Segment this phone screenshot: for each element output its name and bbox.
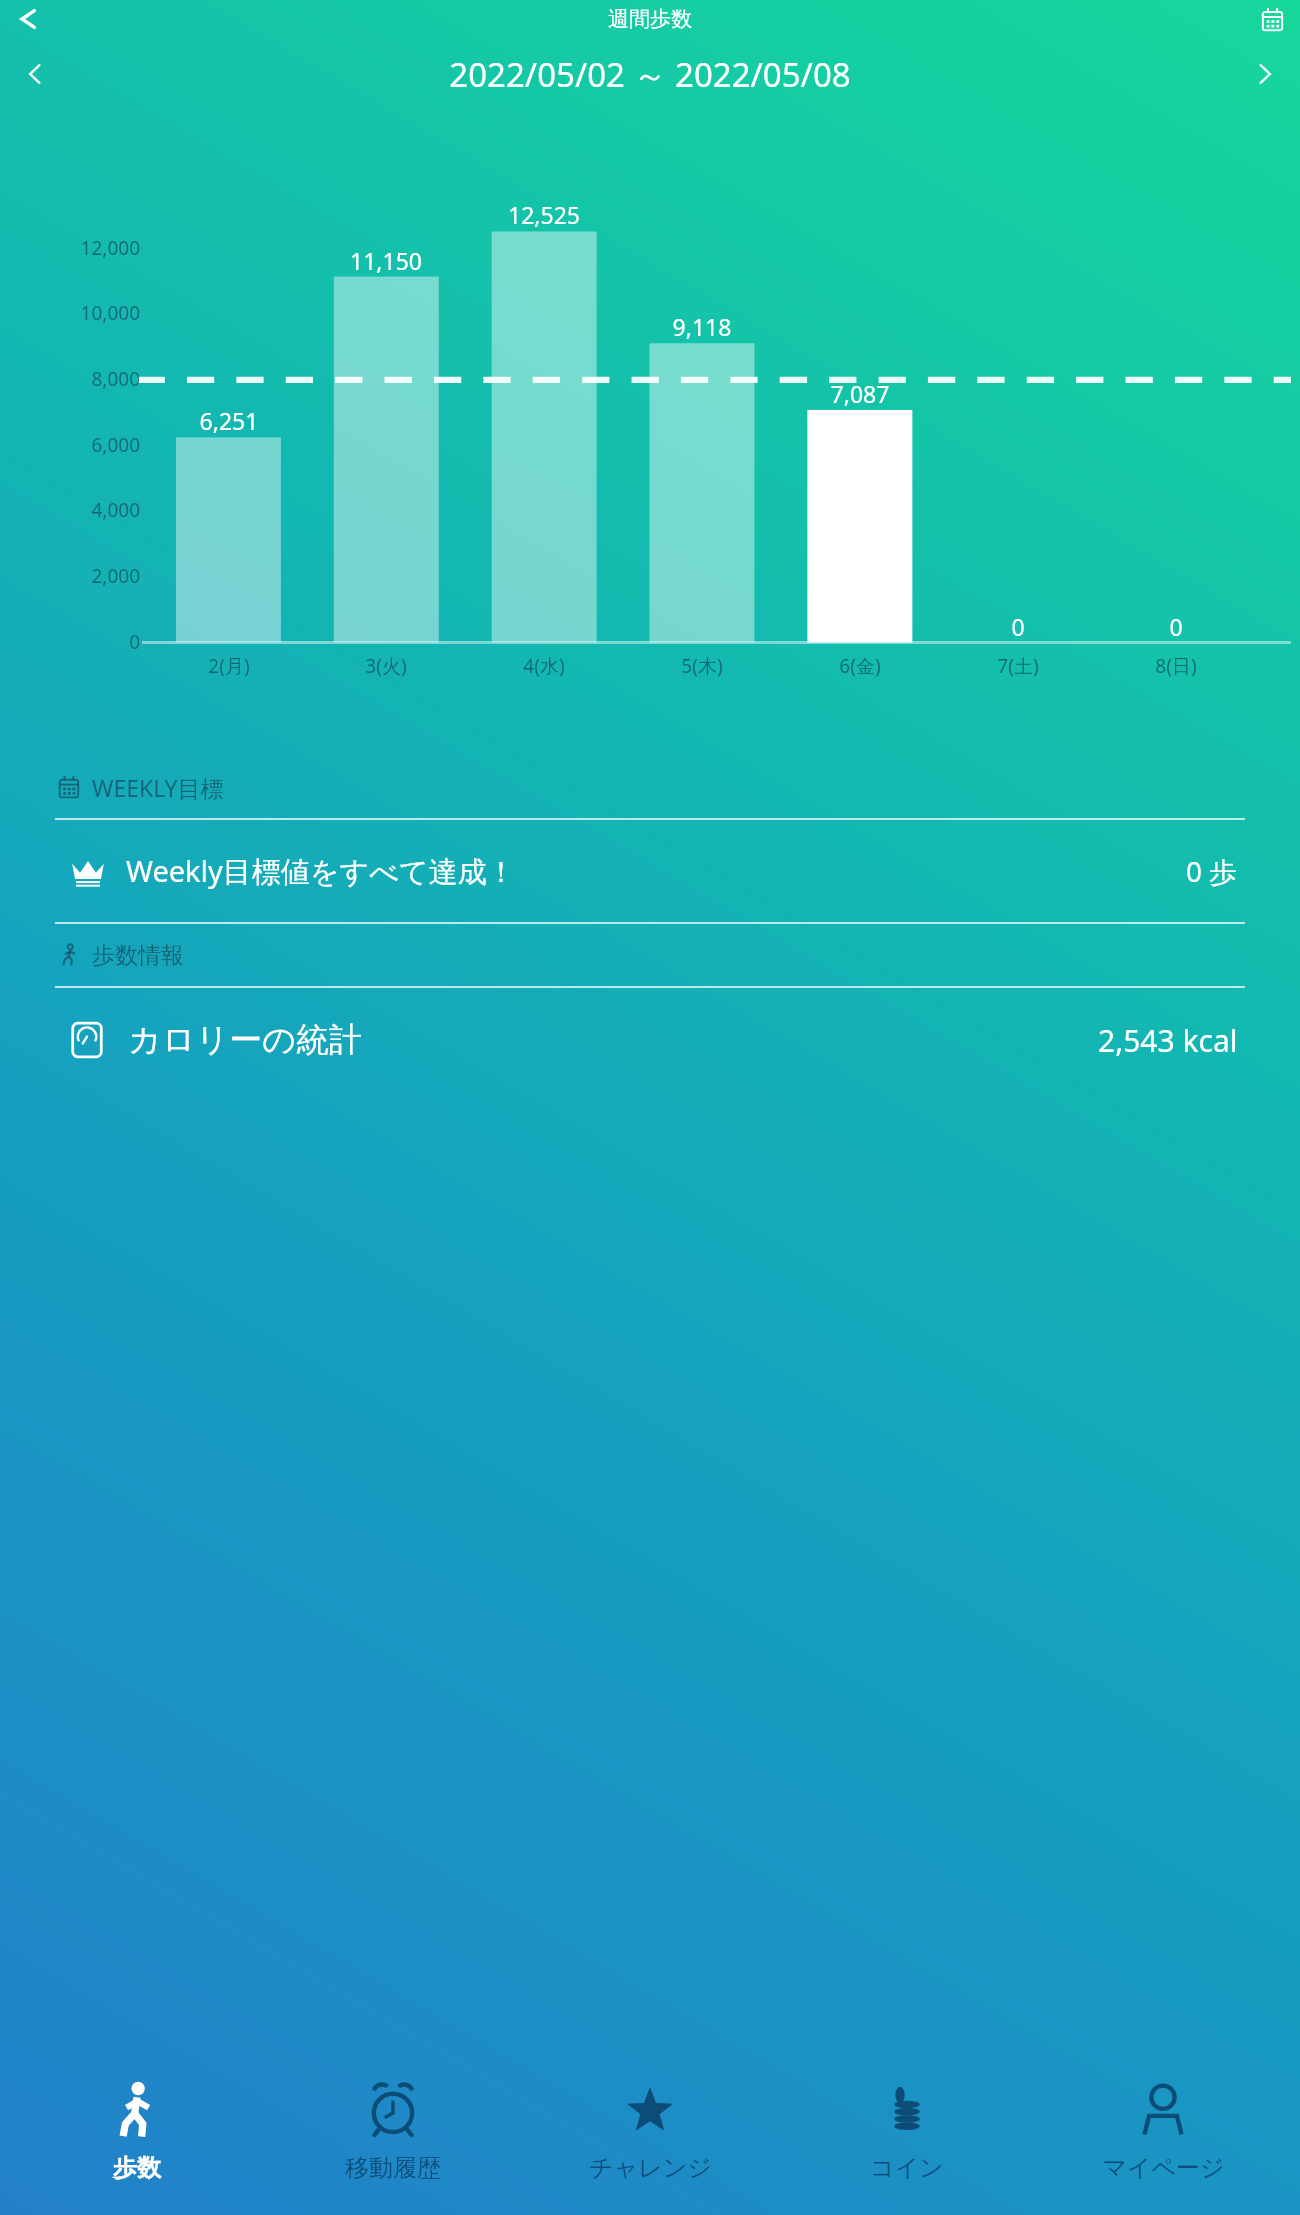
button[interactable]: 移動履歴 [273, 2063, 513, 2215]
staticText: Weekly目標値をすべて達成！ [126, 851, 516, 891]
button[interactable]: 歩数 [17, 2063, 257, 2215]
staticText: 0 [939, 611, 1097, 642]
button[interactable]: Weekly目標値をすべて達成！ [0, 820, 1300, 922]
staticText: 10,000 [4, 300, 140, 326]
staticText: 8(日) [1097, 653, 1255, 679]
staticText: 6,251 [150, 405, 308, 436]
button[interactable]: Back [4, 0, 44, 38]
staticText: 2(月) [150, 653, 308, 679]
staticText: 2,543 kcal [1098, 1020, 1238, 1061]
staticText: 週間歩数 [608, 6, 692, 32]
button[interactable]: マイページ [1043, 2063, 1283, 2215]
staticText: 0 [4, 629, 140, 655]
staticText: 0 歩 [1186, 852, 1238, 890]
staticText: 7(土) [939, 653, 1097, 679]
staticText: 8,000 [4, 366, 140, 392]
staticText: 12,525 [465, 199, 623, 230]
staticText: 0 [1097, 611, 1255, 642]
staticText: 9,118 [623, 311, 781, 342]
staticText: 6(金) [781, 653, 939, 679]
staticText: WEEKLY目標 [92, 772, 224, 803]
staticText: 7,087 [781, 378, 939, 409]
staticText: 12,000 [4, 235, 140, 261]
button[interactable]: コイン [787, 2063, 1027, 2215]
button[interactable]: カロリーの統計 [0, 988, 1300, 1092]
staticText: 11,150 [307, 245, 465, 276]
staticText: 4,000 [4, 497, 140, 523]
staticText: 3(火) [307, 653, 465, 679]
staticText: 6,000 [4, 432, 140, 458]
staticText: 2,000 [4, 563, 140, 589]
staticText: 4(水) [465, 653, 623, 679]
staticText: 5(木) [623, 653, 781, 679]
staticText: コイン [870, 2153, 944, 2183]
staticText: 歩数 [113, 2153, 161, 2183]
button[interactable]: チャレンジ [530, 2063, 770, 2215]
staticText: 移動履歴 [345, 2153, 441, 2183]
staticText: カロリーの統計 [128, 1019, 363, 1061]
button[interactable]: Previous week [12, 51, 58, 97]
staticText: チャレンジ [589, 2153, 712, 2183]
staticText: マイページ [1102, 2153, 1225, 2183]
button[interactable]: Next week [1242, 51, 1288, 97]
button[interactable]: Calendar [1254, 1, 1290, 37]
staticText: 2022/05/02 ～ 2022/05/08 [449, 52, 851, 97]
staticText: 歩数情報 [92, 941, 184, 970]
